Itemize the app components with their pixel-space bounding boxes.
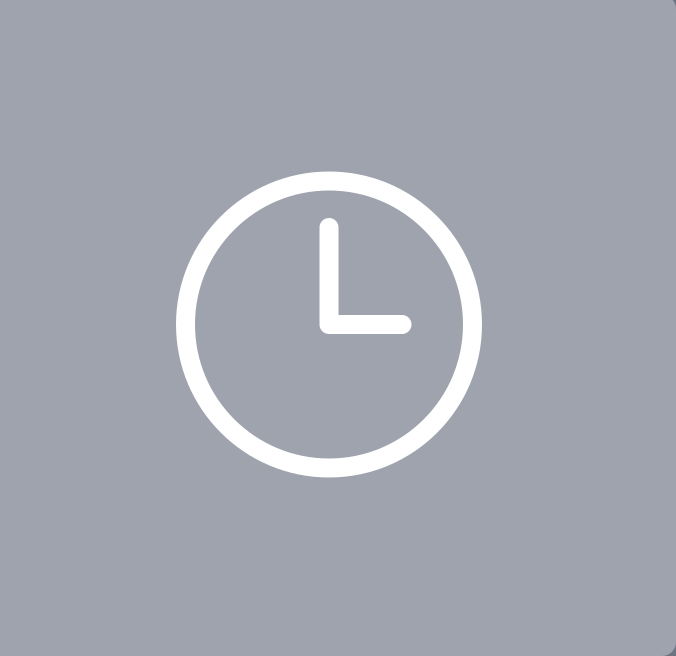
button[interactable]: Clock: [0, 0, 676, 656]
